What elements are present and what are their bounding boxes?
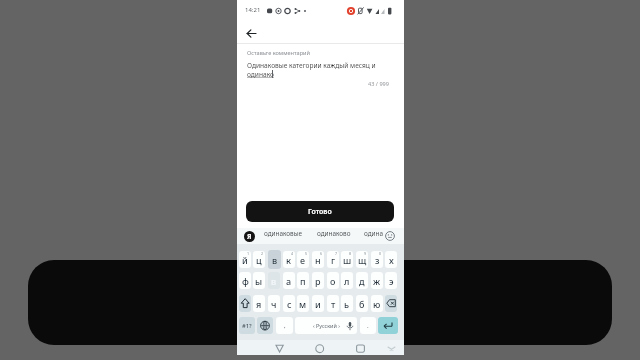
staticText: и	[315, 298, 321, 310]
button[interactable]: ,	[276, 317, 293, 334]
button[interactable]	[385, 295, 397, 312]
button[interactable]: ю	[371, 295, 383, 312]
staticText: одинаково	[317, 229, 351, 238]
staticText: щ	[358, 254, 367, 266]
staticText: ,	[284, 322, 286, 330]
staticText: ь	[344, 298, 350, 310]
staticText: 0	[379, 251, 382, 256]
button[interactable]: .	[360, 317, 376, 334]
staticText: р	[315, 275, 321, 287]
button[interactable]	[273, 341, 286, 354]
button[interactable]: #1?	[239, 317, 255, 334]
staticText: в	[272, 254, 278, 266]
staticText: б	[359, 298, 365, 310]
staticText: 14:21	[245, 6, 261, 14]
button[interactable]	[243, 25, 261, 43]
staticText: .	[367, 322, 369, 330]
button[interactable]: з	[371, 251, 383, 268]
staticText: ч	[271, 298, 277, 310]
button[interactable]: т	[327, 295, 339, 312]
staticText: одинако	[247, 70, 274, 79]
staticText: Я	[247, 232, 252, 241]
button[interactable]: г	[327, 251, 339, 268]
button[interactable]: ж	[371, 272, 383, 289]
button[interactable]: л	[341, 272, 353, 289]
staticText: с	[287, 298, 292, 310]
button[interactable]: одинаковые	[264, 229, 303, 238]
staticText: 7	[335, 251, 338, 256]
button[interactable]: я	[253, 295, 265, 312]
button[interactable]	[313, 341, 326, 354]
staticText: 9	[364, 251, 367, 256]
button[interactable]: Готово	[246, 201, 394, 222]
button[interactable]	[385, 341, 398, 354]
staticText: з	[375, 254, 380, 266]
button[interactable]: е	[297, 251, 309, 268]
button[interactable]: в	[268, 272, 280, 289]
staticText: п	[300, 275, 306, 287]
button[interactable]: одинаково	[317, 229, 351, 238]
staticText: #1?	[242, 322, 252, 330]
staticText: 2	[261, 251, 264, 256]
button[interactable]: б	[356, 295, 368, 312]
staticText: т	[331, 298, 336, 310]
button[interactable]: ‹ Русский ›	[295, 317, 357, 334]
staticText: е	[300, 254, 306, 266]
button[interactable]: и	[312, 295, 324, 312]
button[interactable]: н	[312, 251, 324, 268]
staticText: н	[315, 254, 321, 266]
button[interactable]: ы	[253, 272, 265, 289]
staticText: 4	[291, 251, 294, 256]
button[interactable]: щ	[356, 251, 368, 268]
staticText: в	[271, 275, 277, 287]
button[interactable]: д	[356, 272, 368, 289]
button[interactable]: ш	[341, 251, 353, 268]
staticText: 6	[320, 251, 323, 256]
staticText: Готово	[308, 207, 332, 217]
button[interactable]: ч	[268, 295, 280, 312]
button[interactable]: ь	[341, 295, 353, 312]
staticText: Оставьте комментарий	[247, 49, 311, 57]
button[interactable]: Я	[244, 231, 255, 242]
staticText: одинаковые	[264, 229, 303, 238]
button[interactable]: ф	[239, 272, 251, 289]
staticText: Одинаковые категории каждый месяц и	[247, 61, 376, 70]
button[interactable]: в	[268, 250, 281, 269]
staticText: ю	[373, 298, 381, 310]
staticText: к	[286, 254, 292, 266]
staticText: ф	[242, 275, 249, 287]
button[interactable]: одинаков	[364, 229, 383, 241]
button[interactable]: а	[283, 272, 295, 289]
button[interactable]: х	[385, 251, 397, 268]
button[interactable]	[239, 295, 251, 312]
staticText: ы	[255, 275, 263, 287]
button[interactable]	[378, 317, 398, 334]
staticText: ц	[256, 254, 262, 266]
button[interactable]	[354, 341, 367, 354]
button[interactable]: п	[297, 272, 309, 289]
staticText: э	[389, 275, 394, 287]
staticText: 8	[349, 251, 352, 256]
staticText: 43 / 999	[368, 80, 389, 88]
staticText: ж	[373, 275, 381, 287]
button[interactable]: ц	[253, 251, 265, 268]
button[interactable]: р	[312, 272, 324, 289]
button[interactable]: й	[239, 251, 251, 268]
staticText: о	[330, 275, 336, 287]
button[interactable]: к	[283, 251, 295, 268]
staticText: й	[242, 254, 248, 266]
button[interactable]	[257, 317, 273, 334]
staticText: ‹ Русский ›	[313, 322, 340, 329]
button[interactable]: с	[283, 295, 295, 312]
staticText: 5	[305, 251, 308, 256]
staticText: х	[389, 254, 394, 266]
button[interactable]: э	[385, 272, 397, 289]
button[interactable]: м	[297, 295, 309, 312]
staticText: г	[331, 254, 336, 266]
staticText: д	[359, 275, 365, 287]
staticText: я	[256, 298, 262, 310]
button[interactable]: о	[327, 272, 339, 289]
staticText: ш	[343, 254, 352, 266]
staticText: м	[299, 298, 307, 310]
button[interactable]	[385, 231, 395, 241]
